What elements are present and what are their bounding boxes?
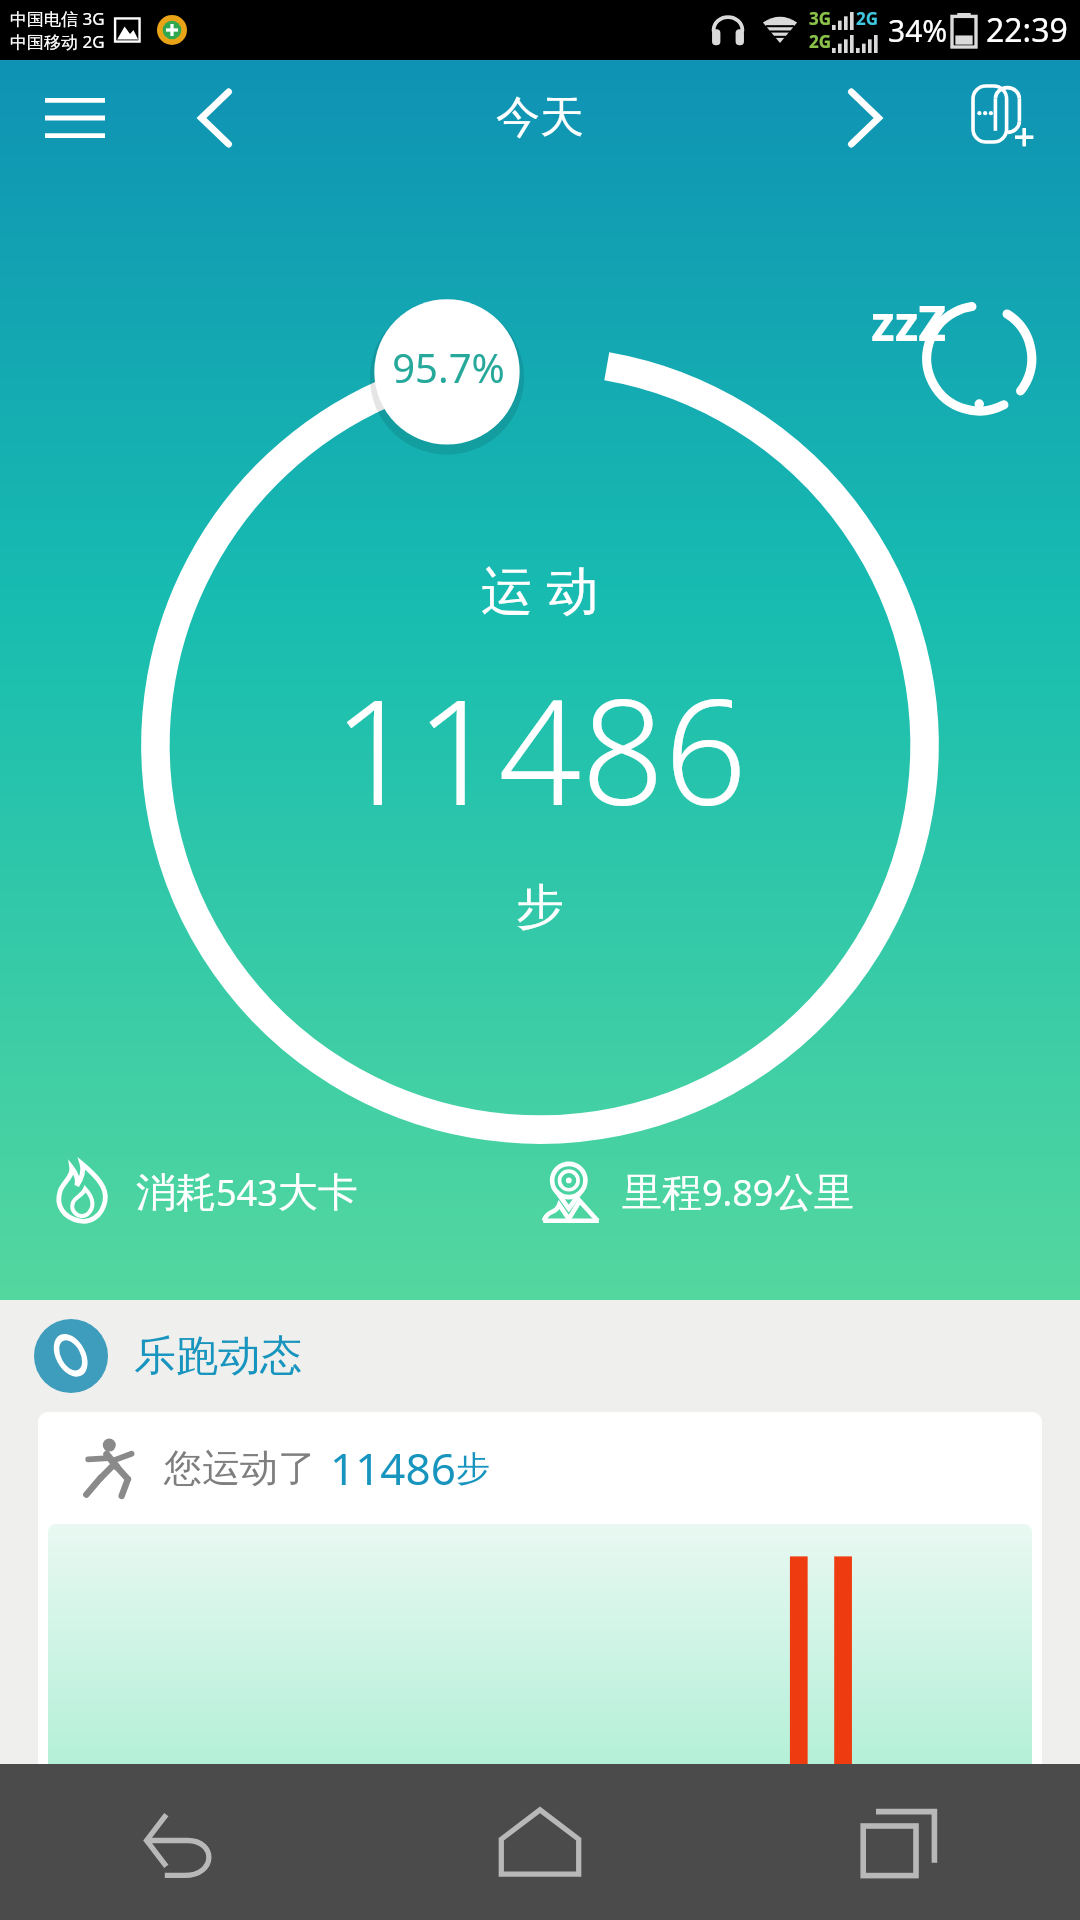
staticText: 大卡 [278, 1167, 358, 1217]
staticText: 消耗 [136, 1167, 216, 1217]
staticText: 中国电信 3G [10, 7, 105, 30]
staticText: 22:39 [986, 8, 1068, 52]
button[interactable]: 您运动了 [38, 1412, 1042, 1764]
button[interactable]: 消耗 [50, 1160, 540, 1224]
staticText: 95.7% [392, 340, 505, 394]
staticText: 9.89 [702, 1168, 774, 1217]
staticText: 里程 [622, 1167, 702, 1217]
staticText: 步 [456, 1447, 490, 1490]
staticText: 公里 [774, 1167, 854, 1217]
staticText: 中国移动 2G [10, 30, 105, 53]
button[interactable]: Add device [930, 60, 1080, 175]
staticText: zzZ [871, 290, 947, 355]
button[interactable]: 里程 [540, 1160, 1080, 1224]
staticText: 步 [516, 877, 564, 937]
staticText: 11486 [333, 650, 747, 847]
button[interactable]: 乐跑动态 [0, 1300, 1080, 1412]
staticText: 您运动了 [164, 1444, 316, 1492]
button[interactable]: Sleep [869, 278, 1044, 453]
staticText: 3G [809, 7, 832, 30]
staticText: 今天 [496, 90, 584, 145]
staticText: 11486 [330, 1438, 456, 1498]
button[interactable]: Previous day [150, 60, 280, 175]
staticText: 运 动 [481, 553, 599, 624]
button[interactable]: Next day [800, 60, 930, 175]
staticText: 2G [856, 7, 879, 30]
staticText: 2G [809, 30, 832, 53]
staticText: 543 [216, 1168, 278, 1217]
staticText: 乐跑动态 [134, 1330, 302, 1383]
button[interactable]: Back [0, 1764, 360, 1920]
button[interactable]: Home [360, 1764, 720, 1920]
button[interactable]: 今天 [280, 60, 800, 175]
staticText: 34% [888, 10, 948, 51]
button[interactable]: Recent apps [720, 1764, 1080, 1920]
button[interactable]: Menu [0, 60, 150, 175]
